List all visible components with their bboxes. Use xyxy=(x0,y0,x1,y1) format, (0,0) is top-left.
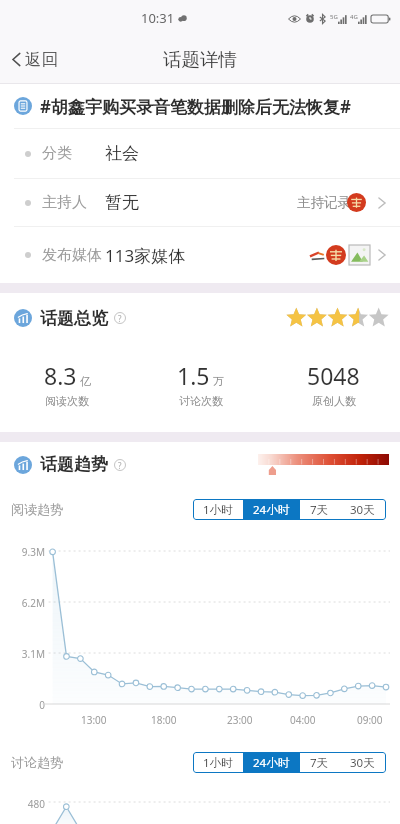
staticText: 18:00 xyxy=(151,713,177,727)
button[interactable]: 24小时 xyxy=(243,499,300,520)
staticText: 3.1M xyxy=(0,647,45,661)
staticText: 09:00 xyxy=(357,713,383,727)
button[interactable]: 主持记录 xyxy=(297,193,389,212)
staticText: ? xyxy=(118,460,122,471)
button[interactable]: 30天 xyxy=(339,752,386,773)
staticText: 讨论次数 xyxy=(179,394,223,408)
staticText: 5G xyxy=(330,13,338,21)
staticText: 24小时 xyxy=(253,755,290,771)
staticText: 话题详情 xyxy=(163,48,237,71)
button[interactable]: 7天 xyxy=(300,752,339,773)
staticText: 1.5 xyxy=(177,360,210,391)
button[interactable]: 1小时 xyxy=(193,752,243,773)
button[interactable]: 分类 xyxy=(25,129,389,178)
staticText: 主持记录 xyxy=(297,194,351,211)
button[interactable]: 30天 xyxy=(339,499,386,520)
button[interactable]: 主持人 xyxy=(25,179,389,226)
staticText: 24小时 xyxy=(253,502,290,518)
staticText: 亿 xyxy=(80,374,91,388)
staticText: 主持人 xyxy=(42,193,87,212)
staticText: 发布媒体 xyxy=(42,246,102,265)
staticText: 4G xyxy=(350,13,358,21)
button[interactable]: 返回 xyxy=(11,36,58,83)
staticText: 分类 xyxy=(42,144,72,163)
staticText: 13:00 xyxy=(81,713,107,727)
staticText: 5048 xyxy=(307,360,360,391)
staticText: 原创人数 xyxy=(312,394,356,408)
staticText: 6.2M xyxy=(0,596,45,610)
button[interactable]: 发布媒体 xyxy=(25,227,389,283)
staticText: 话题总览 xyxy=(40,308,108,329)
staticText: 万 xyxy=(213,374,224,388)
staticText: 9.3M xyxy=(0,545,45,559)
staticText: 0 xyxy=(0,698,45,712)
button[interactable]: 24小时 xyxy=(243,752,300,773)
staticText: 30天 xyxy=(350,755,375,771)
staticText: 480 xyxy=(0,797,45,811)
staticText: #胡鑫宇购买录音笔数据删除后无法恢复# xyxy=(40,95,351,118)
staticText: 7天 xyxy=(310,502,329,518)
staticText: 10:31 xyxy=(141,9,175,27)
button[interactable] xyxy=(309,245,389,265)
staticText: ? xyxy=(118,313,122,324)
staticText: 8.3 xyxy=(44,360,77,391)
staticText: 1小时 xyxy=(203,502,233,518)
staticText: 暂无 xyxy=(105,192,139,213)
staticText: 23:00 xyxy=(227,713,253,727)
staticText: 阅读趋势 xyxy=(11,501,63,517)
button[interactable]: 说明 xyxy=(114,312,126,324)
button[interactable]: 说明 xyxy=(114,459,126,471)
staticText: 话题趋势 xyxy=(40,454,108,475)
staticText: 7天 xyxy=(310,755,329,771)
staticText: 113家媒体 xyxy=(105,244,186,267)
button[interactable]: 7天 xyxy=(300,499,339,520)
staticText: 讨论趋势 xyxy=(11,754,63,770)
staticText: 30天 xyxy=(350,502,375,518)
staticText: 社会 xyxy=(105,143,139,164)
button[interactable]: 1小时 xyxy=(193,499,243,520)
staticText: 1小时 xyxy=(203,755,233,771)
staticText: 阅读次数 xyxy=(45,394,89,408)
button[interactable]: #胡鑫宇购买录音笔数据删除后无法恢复# xyxy=(14,84,390,128)
staticText: 返回 xyxy=(25,49,58,70)
staticText: 04:00 xyxy=(290,713,316,727)
